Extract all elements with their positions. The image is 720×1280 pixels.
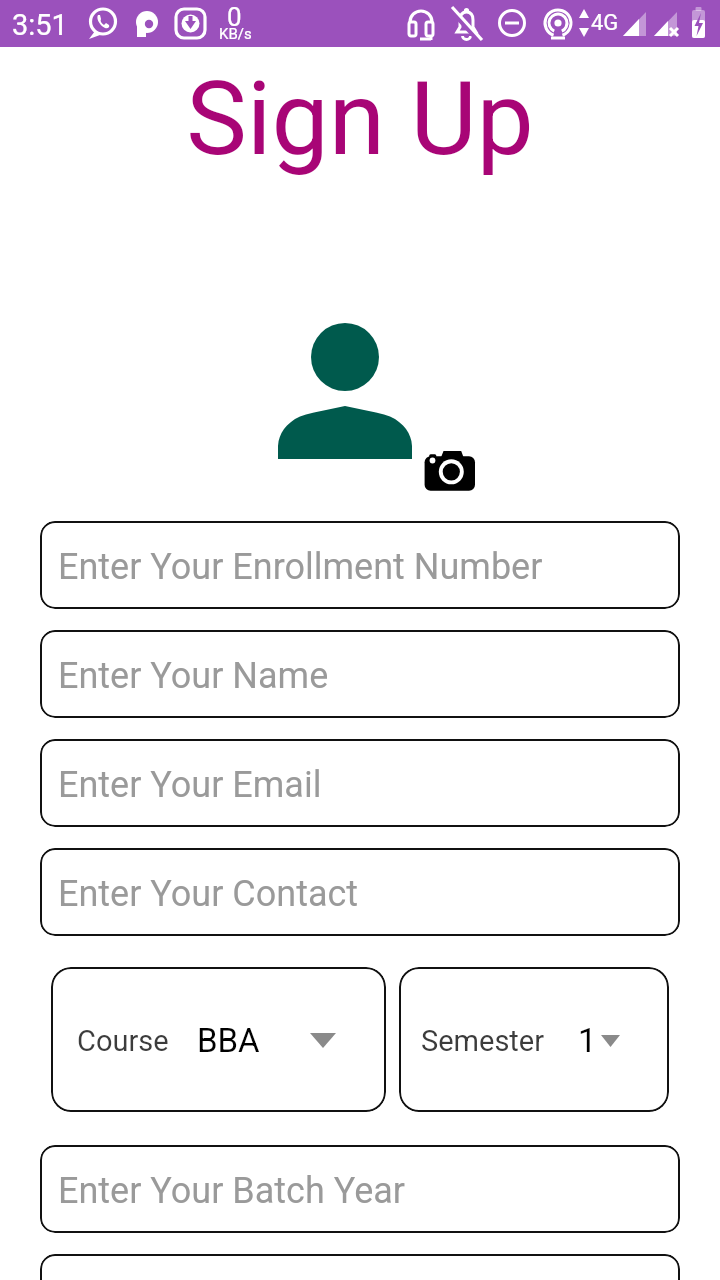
staticText: Sign Up — [0, 59, 720, 179]
staticText: Semester — [421, 1024, 545, 1058]
button[interactable]: Enter Your Batch Year — [40, 1145, 680, 1233]
button[interactable]: Semester — [399, 967, 669, 1112]
button[interactable]: Change profile photo — [424, 451, 475, 452]
button[interactable]: Enter Your Contact — [40, 848, 680, 936]
button[interactable]: Profile photo — [278, 323, 412, 324]
staticText: Enter Your Contact — [58, 873, 359, 915]
staticText: 3:51 — [12, 8, 68, 42]
staticText: Enter Your Name — [58, 655, 329, 697]
staticText: Enter Your Batch Year — [58, 1170, 406, 1212]
staticText: Enter Your Enrollment Number — [58, 546, 543, 588]
button[interactable]: Enter Your Password — [40, 1254, 680, 1280]
button[interactable]: Enter Your Name — [40, 630, 680, 718]
staticText: 0 — [227, 2, 242, 32]
staticText: KB/s — [219, 25, 252, 43]
staticText: Course — [77, 1024, 169, 1058]
button[interactable]: Enter Your Email — [40, 739, 680, 827]
staticText: 4G — [591, 10, 619, 36]
button[interactable]: Enter Your Enrollment Number — [40, 521, 680, 609]
staticText: 1 — [578, 1021, 597, 1060]
staticText: Enter Your Email — [58, 764, 322, 806]
staticText: BBA — [197, 1021, 260, 1060]
button[interactable]: Course — [51, 967, 386, 1112]
